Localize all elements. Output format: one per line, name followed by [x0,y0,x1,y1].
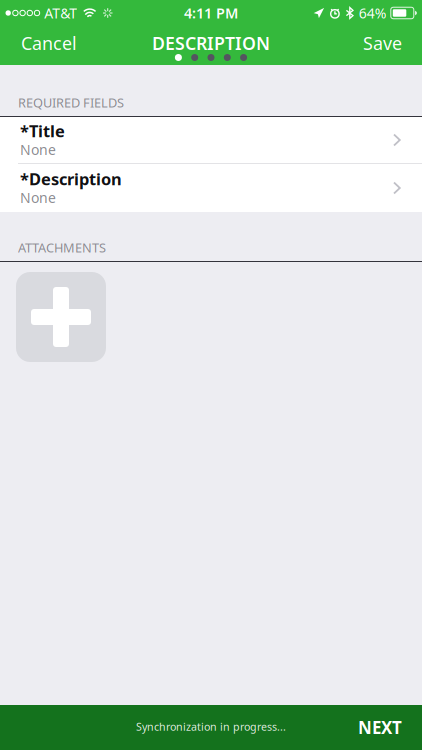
button[interactable]: NEXT [342,706,422,749]
staticText: REQUIRED FIELDS [18,94,124,111]
staticText: *Description [20,168,122,190]
staticText: ATTACHMENTS [18,239,106,256]
staticText: NEXT [358,716,402,739]
button[interactable]: *Description [0,164,422,212]
staticText: AT&T [44,3,77,23]
button[interactable]: Cancel [0,26,91,60]
staticText: None [20,188,56,207]
button[interactable]: Save [349,26,422,60]
staticText: Synchronization in progress... [136,719,286,734]
button[interactable]: Add attachment [16,272,106,362]
staticText: None [20,140,56,159]
staticText: Cancel [21,31,77,55]
staticText: Save [363,31,402,55]
staticText: *Title [20,120,65,142]
staticText: 64% [359,3,387,23]
button[interactable]: *Title [0,117,422,163]
staticText: 4:11 PM [184,3,238,23]
staticText: DESCRIPTION [152,31,270,55]
